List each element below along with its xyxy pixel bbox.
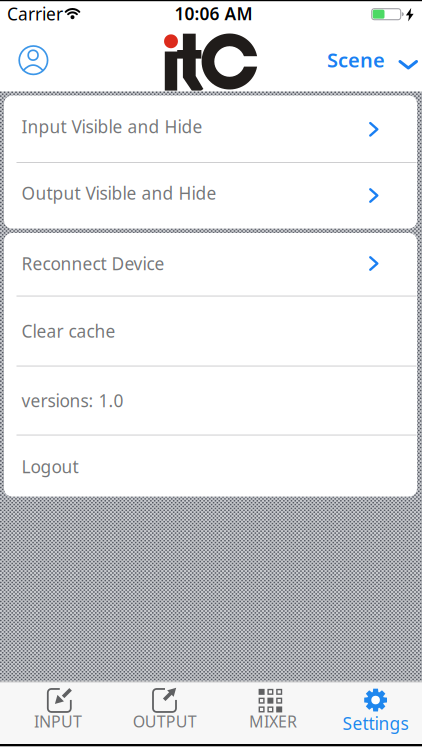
staticText: Input Visible and Hide [21, 115, 202, 138]
staticText: Reconnect Device [21, 252, 164, 275]
button[interactable]: versions: 1.0 [4, 366, 417, 435]
staticText: Output Visible and Hide [21, 181, 216, 204]
staticText: Settings [342, 712, 408, 735]
button[interactable]: Reconnect Device [4, 233, 417, 296]
button[interactable]: Settings [323, 682, 422, 744]
staticText: OUTPUT [133, 711, 197, 732]
button[interactable]: Input Visible and Hide [4, 95, 417, 162]
staticText: Logout [21, 455, 78, 478]
button[interactable]: INPUT [6, 682, 111, 744]
button[interactable]: OUTPUT [112, 682, 217, 744]
staticText: 10:06 AM [174, 2, 252, 25]
staticText: versions: 1.0 [21, 389, 123, 412]
staticText: Scene [327, 46, 385, 73]
button[interactable]: MIXER [218, 682, 323, 744]
button[interactable]: Logout [4, 435, 417, 496]
staticText: MIXER [249, 711, 297, 732]
button[interactable]: Output Visible and Hide [4, 163, 417, 228]
button[interactable]: Account [15, 42, 51, 78]
staticText: INPUT [34, 711, 82, 732]
staticText: Clear cache [21, 319, 115, 342]
button[interactable]: Scene [325, 43, 422, 79]
staticText: Carrier [7, 2, 63, 25]
button[interactable]: Clear cache [4, 296, 417, 366]
